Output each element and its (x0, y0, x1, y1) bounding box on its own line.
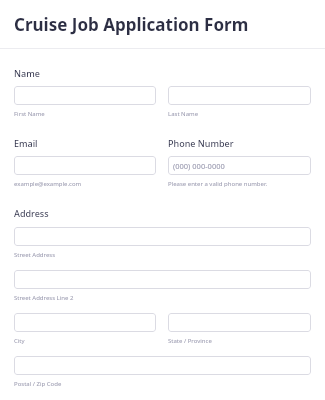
staticText: Postal / Zip Code (14, 380, 62, 388)
staticText: Phone Number (168, 137, 234, 149)
staticText: example@example.com (14, 180, 82, 188)
button[interactable]: State / Province (168, 313, 311, 332)
staticText: Email (14, 137, 38, 149)
staticText: City (14, 337, 25, 345)
staticText: Street Address Line 2 (14, 294, 74, 302)
staticText: Name (14, 67, 40, 79)
staticText: First Name (14, 110, 45, 118)
staticText: Street Address (14, 251, 56, 259)
button[interactable]: First Name (14, 86, 156, 105)
button[interactable]: Street Address (14, 227, 311, 246)
button[interactable]: Phone Number (168, 156, 311, 175)
staticText: Please enter a valid phone number. (168, 180, 268, 188)
button[interactable]: Last Name (168, 86, 311, 105)
button[interactable]: Postal / Zip Code (14, 356, 311, 375)
staticText: State / Province (168, 337, 212, 345)
button[interactable]: Street Address Line 2 (14, 270, 311, 289)
staticText: (000) 000-0000 (173, 161, 225, 171)
staticText: Last Name (168, 110, 199, 118)
staticText: Cruise Job Application Form (14, 13, 249, 36)
button[interactable]: Email (14, 156, 156, 175)
button[interactable]: City (14, 313, 156, 332)
staticText: Address (14, 207, 49, 219)
